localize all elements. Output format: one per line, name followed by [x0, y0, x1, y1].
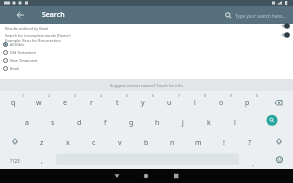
button[interactable]: g: [123, 118, 139, 128]
button[interactable]: [0, 169, 293, 183]
button[interactable]: a: [19, 118, 35, 128]
staticText: w: [36, 98, 42, 108]
staticText: s: [51, 118, 55, 128]
staticText: l: [234, 118, 236, 128]
button[interactable]: u: [161, 98, 177, 108]
button[interactable]: p: [239, 98, 255, 108]
staticText: g: [129, 118, 134, 128]
button[interactable]: c: [86, 138, 102, 148]
button[interactable]: [56, 154, 239, 166]
staticText: 1: [22, 93, 25, 98]
staticText: p: [245, 98, 250, 108]
button[interactable]: t: [109, 98, 125, 108]
staticText: h: [155, 118, 160, 128]
staticText: j: [182, 118, 184, 128]
staticText: !: [223, 138, 225, 148]
staticText: 6: [152, 93, 155, 98]
button[interactable]: z: [34, 138, 50, 148]
staticText: ?: [248, 138, 252, 148]
button[interactable]: Type your search here...: [225, 12, 286, 19]
staticText: e: [63, 98, 67, 108]
button[interactable]: [266, 114, 278, 126]
button[interactable]: [277, 22, 290, 30]
button[interactable]: m: [190, 138, 206, 148]
button[interactable]: j: [175, 118, 191, 128]
button[interactable]: l: [227, 118, 243, 128]
staticText: 3: [74, 93, 77, 98]
button[interactable]: s: [45, 118, 61, 128]
staticText: q: [11, 98, 16, 108]
button[interactable]: Old Testament: [3, 49, 36, 56]
staticText: a: [25, 118, 29, 128]
staticText: k: [207, 118, 211, 128]
staticText: 2: [48, 93, 51, 98]
staticText: Suggest contact names? Touch for info.: [110, 83, 184, 88]
button[interactable]: All Bible: [3, 41, 25, 48]
button[interactable]: i: [187, 98, 203, 108]
staticText: t: [116, 98, 119, 108]
button[interactable]: e: [57, 98, 73, 108]
button[interactable]: k: [201, 118, 217, 128]
button[interactable]: v: [112, 138, 128, 148]
staticText: Type your search here...: [235, 13, 286, 19]
button[interactable]: [277, 31, 290, 39]
button[interactable]: New Testament: [3, 57, 38, 64]
staticText: Search: [42, 10, 65, 20]
staticText: m: [195, 138, 202, 148]
button[interactable]: w: [31, 98, 47, 108]
button[interactable]: o: [213, 98, 229, 108]
staticText: Results ordered by Book: [5, 26, 49, 31]
staticText: Example: Resu for Resurrection: [5, 38, 61, 43]
button[interactable]: .: [245, 159, 261, 169]
staticText: d: [77, 118, 82, 128]
button[interactable]: f: [97, 118, 113, 128]
button[interactable]: b: [138, 138, 154, 148]
button[interactable]: q: [5, 98, 21, 108]
staticText: 9: [230, 93, 233, 98]
staticText: 4: [100, 93, 103, 98]
staticText: Search for incomplete words (Faster).: [5, 33, 72, 38]
button[interactable]: d: [71, 118, 87, 128]
staticText: 8: [204, 93, 207, 98]
button[interactable]: !: [216, 138, 232, 148]
staticText: u: [167, 98, 172, 108]
staticText: o: [219, 98, 224, 108]
staticText: i: [194, 98, 196, 108]
button[interactable]: y: [135, 98, 151, 108]
staticText: b: [144, 138, 149, 148]
staticText: Old Testament: [10, 50, 36, 55]
staticText: v: [118, 138, 122, 148]
staticText: y: [141, 98, 145, 108]
staticText: All Bible: [10, 42, 25, 47]
button[interactable]: n: [164, 138, 180, 148]
button[interactable]: r: [83, 98, 99, 108]
staticText: 7: [178, 93, 181, 98]
staticText: Book: [10, 66, 20, 71]
staticText: x: [66, 138, 70, 148]
staticText: c: [92, 138, 96, 148]
button[interactable]: x: [60, 138, 76, 148]
staticText: .: [252, 159, 254, 169]
button[interactable]: ,: [34, 156, 50, 166]
button[interactable]: [15, 10, 25, 20]
staticText: n: [170, 138, 175, 148]
staticText: 5: [126, 93, 129, 98]
button[interactable]: ?: [242, 138, 258, 148]
staticText: New Testament: [10, 58, 38, 63]
staticText: 0: [256, 93, 259, 98]
button[interactable]: h: [149, 118, 165, 128]
staticText: r: [90, 98, 93, 108]
staticText: ,: [41, 156, 43, 166]
staticText: f: [104, 118, 107, 128]
button[interactable]: ?123: [7, 156, 23, 166]
staticText: z: [40, 138, 44, 148]
staticText: ?123: [10, 158, 20, 164]
button[interactable]: Book: [3, 65, 20, 72]
button[interactable]: Suggest contact names? Touch for info.: [0, 79, 293, 91]
